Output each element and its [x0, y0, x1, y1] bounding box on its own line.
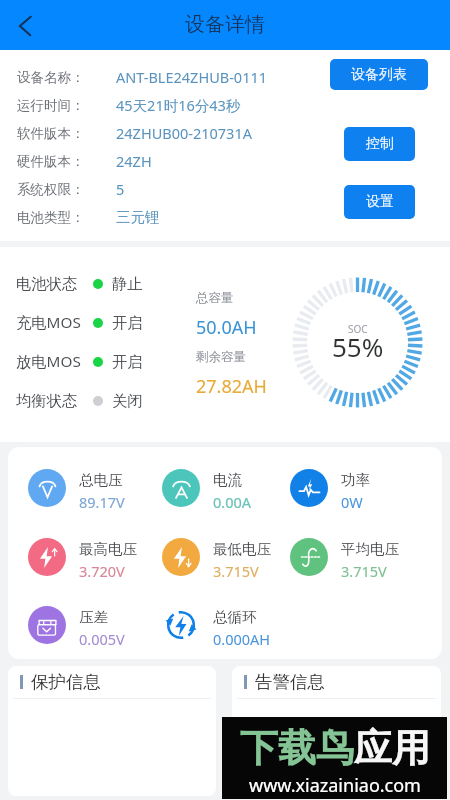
- staticText: 55%: [332, 329, 384, 364]
- staticText: 开启: [112, 352, 143, 371]
- button[interactable]: 设置: [344, 185, 415, 219]
- staticText: 3.720V: [79, 561, 125, 581]
- staticText: 电池类型：: [17, 209, 85, 226]
- staticText: 软件版本：: [17, 125, 85, 142]
- staticText: 总电压: [79, 471, 123, 489]
- staticText: 剩余容量: [196, 349, 246, 365]
- staticText: 0.000AH: [213, 629, 271, 649]
- button[interactable]: 功率: [290, 462, 420, 514]
- staticText: 3.715V: [341, 561, 387, 581]
- staticText: www.xiazainiao.com: [249, 773, 421, 798]
- staticText: 最高电压: [79, 540, 137, 558]
- staticText: 27.82AH: [196, 374, 267, 399]
- staticText: 系统权限：: [17, 181, 85, 198]
- staticText: 平均电压: [341, 540, 399, 558]
- button[interactable]: 压差: [28, 599, 158, 651]
- staticText: 关闭: [112, 391, 143, 410]
- staticText: 下载鸟: [240, 724, 354, 772]
- staticText: 0.005V: [79, 629, 125, 649]
- staticText: 保护信息: [31, 671, 101, 693]
- staticText: 应用: [354, 724, 430, 772]
- button[interactable]: 平均电压: [290, 531, 420, 583]
- staticText: 24ZHUB00-210731A: [116, 123, 252, 143]
- button[interactable]: 电流: [162, 462, 292, 514]
- button[interactable]: Back: [5, 6, 45, 46]
- staticText: 三元锂: [116, 208, 160, 226]
- staticText: 控制: [366, 135, 394, 153]
- staticText: 告警信息: [255, 671, 325, 693]
- button[interactable]: 最高电压: [28, 531, 158, 583]
- staticText: 5: [116, 179, 125, 199]
- staticText: 45天21时16分43秒: [116, 95, 241, 115]
- staticText: ANT-BLE24ZHUB-0111: [116, 67, 268, 87]
- button[interactable]: 总循环: [162, 599, 292, 651]
- staticText: 总容量: [196, 290, 234, 306]
- staticText: 设置: [366, 193, 394, 211]
- staticText: 50.0AH: [196, 315, 257, 340]
- staticText: 0.00A: [213, 492, 252, 512]
- staticText: SOC: [348, 322, 368, 336]
- staticText: 电池状态: [16, 274, 78, 293]
- button[interactable]: 最低电压: [162, 531, 292, 583]
- button[interactable]: 控制: [344, 127, 415, 161]
- staticText: 运行时间：: [17, 97, 85, 114]
- staticText: 均衡状态: [16, 391, 78, 410]
- staticText: 静止: [112, 274, 143, 293]
- staticText: 充电MOS: [16, 312, 81, 333]
- staticText: 最低电压: [213, 540, 271, 558]
- staticText: 开启: [112, 313, 143, 332]
- staticText: 放电MOS: [16, 351, 81, 372]
- staticText: 24ZH: [116, 151, 152, 171]
- staticText: 设备详情: [185, 12, 265, 37]
- staticText: 电流: [213, 471, 242, 489]
- staticText: 设备名称：: [17, 69, 85, 86]
- staticText: 0W: [341, 492, 363, 512]
- button[interactable]: 设备列表: [330, 59, 428, 90]
- button[interactable]: 总电压: [28, 462, 158, 514]
- staticText: 压差: [79, 608, 108, 626]
- staticText: 3.715V: [213, 561, 259, 581]
- staticText: 总循环: [213, 608, 257, 626]
- staticText: 硬件版本：: [17, 153, 85, 170]
- staticText: 89.17V: [79, 492, 125, 512]
- staticText: 设备列表: [351, 66, 407, 84]
- staticText: 功率: [341, 471, 370, 489]
